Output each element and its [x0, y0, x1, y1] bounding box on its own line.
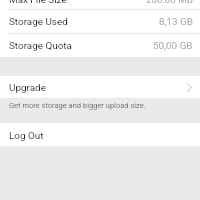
staticText: 8,13 GB — [159, 16, 193, 28]
staticText: Get more storage and bigger upload size. — [9, 101, 146, 110]
button[interactable]: Log Out — [0, 123, 200, 146]
button[interactable]: Upgrade — [0, 76, 200, 98]
staticText: 50,00 GB — [153, 40, 193, 52]
button[interactable]: Storage Quota — [0, 34, 200, 57]
staticText: Max File Size — [9, 0, 67, 3]
staticText: Log Out — [9, 130, 44, 142]
staticText: Upgrade — [9, 82, 46, 94]
staticText: 200,00 MB — [146, 0, 193, 3]
other: Upgrade — [187, 83, 192, 92]
button[interactable]: Storage Used — [0, 10, 200, 33]
staticText: Storage Used — [9, 16, 68, 28]
button[interactable]: Max File Size — [0, 0, 200, 9]
staticText: Storage Quota — [9, 40, 72, 52]
